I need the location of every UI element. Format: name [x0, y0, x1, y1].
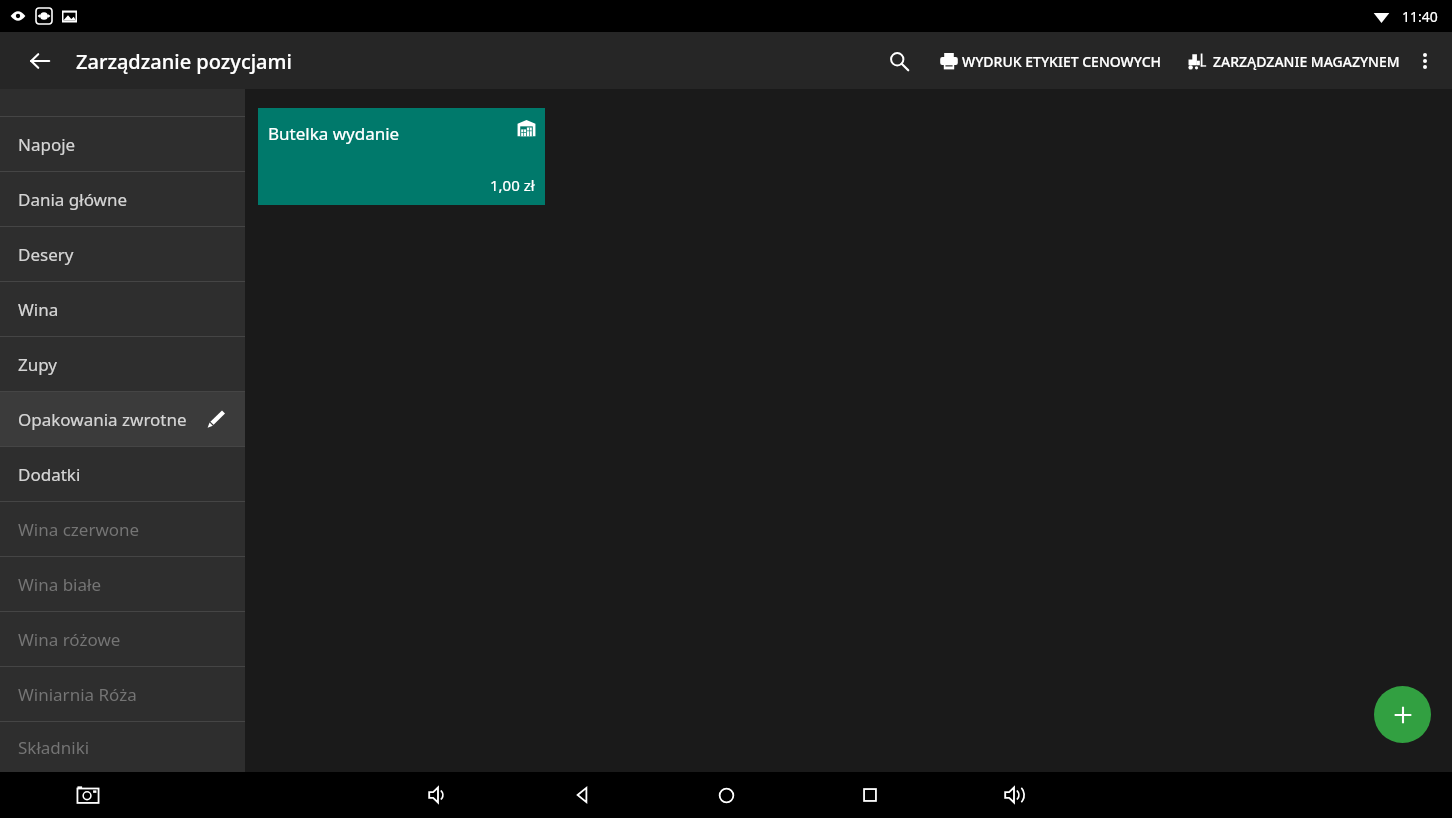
button[interactable]: More options [1404, 40, 1446, 82]
staticText: Butelka wydanie [268, 122, 400, 145]
button[interactable]: Winiarnia Róża [0, 667, 245, 721]
button[interactable]: Back [560, 773, 604, 817]
staticText: Wina czerwone [18, 518, 140, 541]
button[interactable]: Volume up [992, 773, 1036, 817]
other: Warehouse item [515, 116, 537, 138]
staticText: Opakowania zwrotne [18, 408, 187, 431]
button[interactable]: Zupy [0, 337, 245, 391]
button[interactable]: Search [877, 39, 921, 83]
button[interactable]: Recent apps [848, 773, 892, 817]
staticText: Napoje [18, 133, 76, 156]
button[interactable]: Wina białe [0, 557, 245, 611]
button[interactable]: Edit category [199, 402, 233, 436]
staticText: Składniki [18, 736, 90, 759]
button[interactable]: Wina [0, 282, 245, 336]
button[interactable]: Wina czerwone [0, 502, 245, 556]
staticText: Desery [18, 243, 74, 266]
staticText: 11:40 [1402, 7, 1438, 26]
button[interactable]: Dodatki [0, 447, 245, 501]
button[interactable]: Dania główne [0, 172, 245, 226]
staticText: 1,00 zł [490, 175, 535, 195]
staticText: WYDRUK ETYKIET CENOWYCH [962, 52, 1162, 71]
staticText: ZARZĄDZANIE MAGAZYNEM [1213, 52, 1400, 71]
staticText: Wina [18, 298, 59, 321]
staticText: Zupy [18, 353, 58, 376]
staticText: Wina białe [18, 573, 102, 596]
button[interactable]: Back [18, 39, 62, 83]
button[interactable]: Home [704, 773, 748, 817]
button[interactable]: Screenshot [68, 775, 108, 815]
button[interactable]: ZARZĄDZANIE MAGAZYNEM [1182, 43, 1404, 80]
staticText: Winiarnia Róża [18, 683, 137, 706]
button[interactable]: Napoje [0, 117, 245, 171]
staticText: Wina różowe [18, 628, 121, 651]
button[interactable]: Add item [1374, 686, 1431, 743]
staticText: Dodatki [18, 463, 81, 486]
button[interactable]: Butelka wydanie [258, 108, 545, 205]
staticText: Dania główne [18, 188, 128, 211]
staticText: Zarządzanie pozycjami [76, 48, 292, 75]
button[interactable]: Desery [0, 227, 245, 281]
button[interactable]: Opakowania zwrotne [0, 392, 245, 446]
button[interactable]: Składniki [0, 722, 245, 772]
button[interactable]: WYDRUK ETYKIET CENOWYCH [935, 43, 1166, 79]
button[interactable]: Volume down [416, 773, 460, 817]
button[interactable]: Wina różowe [0, 612, 245, 666]
